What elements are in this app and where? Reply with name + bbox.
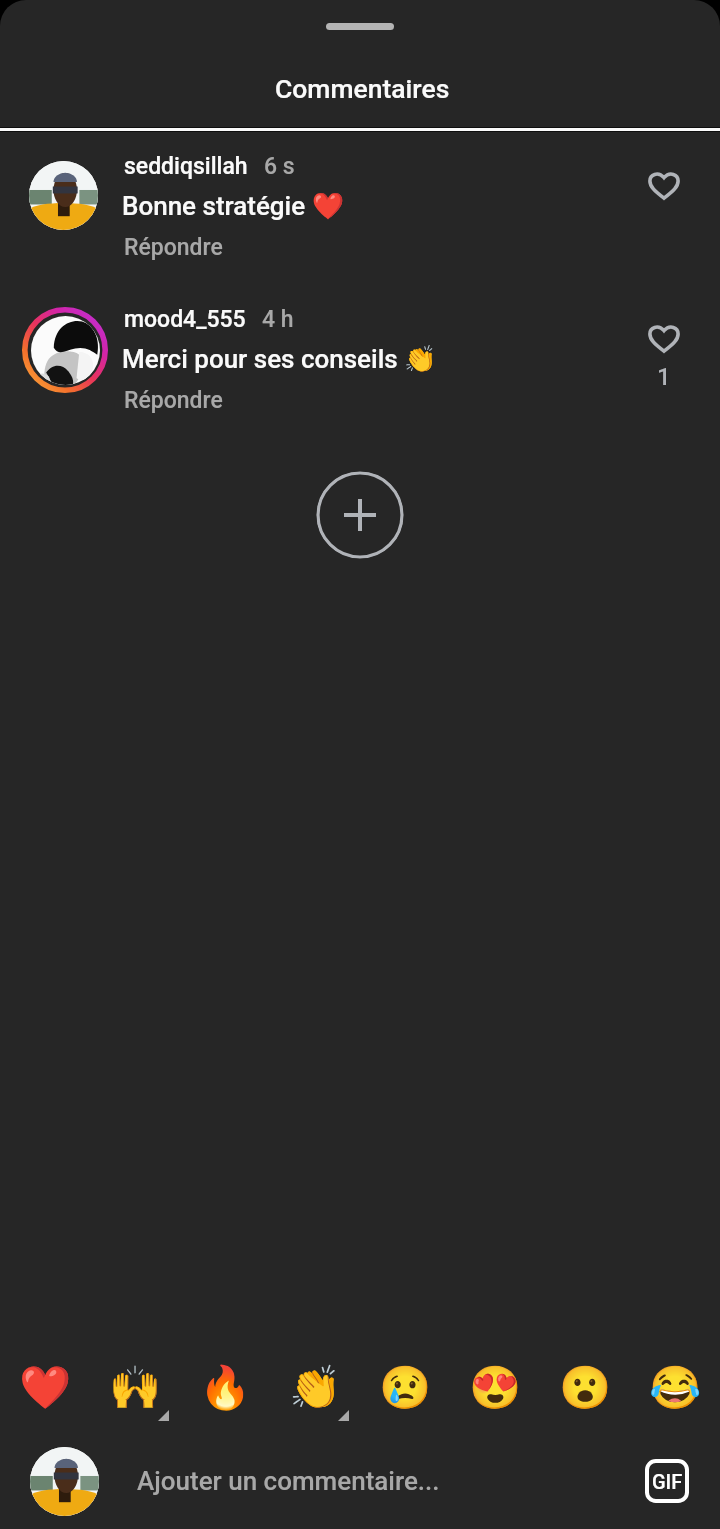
staticText: Bonne stratégie ❤️ (122, 191, 344, 221)
staticText: 1 (657, 363, 671, 391)
staticText: 🔥 (199, 1363, 252, 1412)
staticText: 😢 (379, 1363, 432, 1412)
staticText: Commentaires (275, 73, 450, 104)
staticText: GIF (652, 1470, 683, 1493)
staticText: Ajouter un commentaire... (137, 1466, 440, 1496)
staticText: 😂 (649, 1363, 702, 1412)
button[interactable]: seddiqsillah (0, 148, 720, 294)
button[interactable]: Répondre (124, 387, 223, 414)
staticText: mood4_555 (124, 306, 246, 333)
button[interactable]: Répondre (124, 234, 223, 261)
button[interactable]: React 👏 (270, 1341, 360, 1433)
staticText: 😍 (469, 1363, 522, 1412)
button[interactable]: Like (644, 165, 684, 205)
staticText: 👏 (289, 1363, 342, 1412)
button[interactable]: React 🔥 (180, 1341, 270, 1433)
staticText: 😮 (559, 1363, 612, 1412)
button[interactable]: Add comment (316, 471, 404, 559)
button[interactable]: Like (644, 318, 684, 358)
staticText: 6 s (264, 153, 295, 180)
staticText: 4 h (262, 306, 294, 333)
button[interactable]: React 😍 (450, 1341, 540, 1433)
button[interactable]: React 😮 (540, 1341, 630, 1433)
staticText: seddiqsillah (124, 153, 248, 180)
button[interactable]: React 🙌 (90, 1341, 180, 1433)
staticText: 🙌 (109, 1363, 162, 1412)
button[interactable]: GIF (643, 1457, 691, 1505)
button[interactable]: React 😢 (360, 1341, 450, 1433)
button[interactable]: mood4_555 (0, 301, 720, 447)
staticText: Merci pour ses conseils 👏 (122, 344, 437, 374)
button[interactable]: React ❤️ (0, 1341, 90, 1433)
staticText: ❤️ (19, 1363, 72, 1412)
button[interactable]: React 😂 (630, 1341, 720, 1433)
